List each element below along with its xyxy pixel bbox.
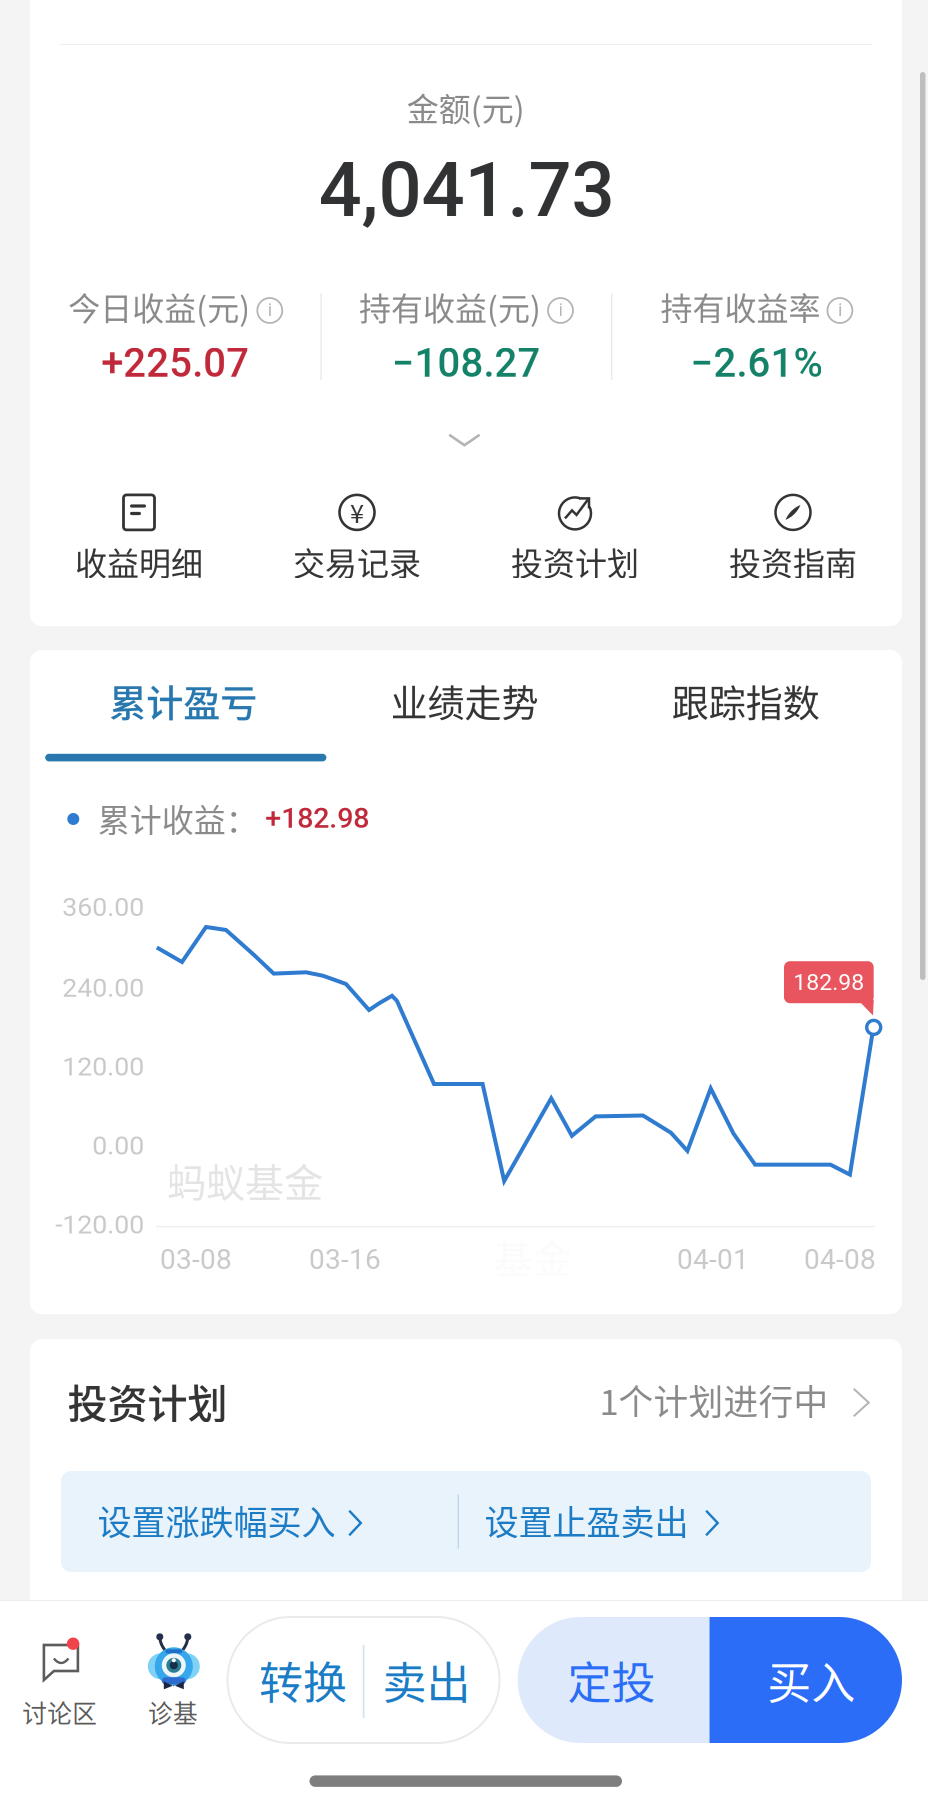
staticText: 240.00 <box>62 972 144 1003</box>
staticText: 120.00 <box>62 1051 144 1082</box>
staticText: 182.98 <box>793 969 864 996</box>
staticText: 定投 <box>568 1648 656 1712</box>
staticText: 持有收益(元) <box>359 283 541 330</box>
staticText: 投资计划 <box>511 538 639 585</box>
staticText: 累计收益： <box>98 795 258 841</box>
button[interactable]: 转换 <box>235 1617 370 1743</box>
button[interactable]: 定投 <box>516 1617 707 1743</box>
staticText: -120.00 <box>55 1209 144 1240</box>
staticText: 03-08 <box>160 1243 232 1276</box>
button[interactable]: 持有收益(元)说明 <box>548 298 573 323</box>
staticText: 04-01 <box>677 1243 749 1276</box>
staticText: 4,041.73 <box>318 145 614 235</box>
staticText: 设置涨跌幅买入 <box>97 1495 335 1545</box>
staticText: −108.27 <box>391 340 540 386</box>
staticText: 持有收益率 <box>660 283 820 330</box>
staticText: +182.98 <box>265 801 369 835</box>
button[interactable]: 买入 <box>715 1617 907 1743</box>
staticText: 诊基 <box>148 1694 198 1730</box>
staticText: 03-16 <box>309 1243 381 1276</box>
staticText: 买入 <box>767 1648 855 1712</box>
staticText: 业绩走势 <box>390 674 538 728</box>
staticText: i <box>558 299 562 321</box>
button[interactable]: 投资指南 <box>684 484 902 610</box>
staticText: 讨论区 <box>22 1694 97 1730</box>
staticText: 投资计划 <box>68 1372 228 1430</box>
staticText: +225.07 <box>101 340 249 386</box>
staticText: ¥ <box>350 494 364 530</box>
button[interactable]: 持有收益率说明 <box>827 298 852 323</box>
staticText: 1个计划进行中 <box>599 1375 828 1425</box>
staticText: 04-08 <box>804 1243 876 1276</box>
button[interactable]: 收起 <box>404 413 524 467</box>
button[interactable]: 业绩走势 <box>324 660 605 770</box>
button[interactable]: 设置涨跌幅买入 <box>61 1471 466 1572</box>
button[interactable]: 讨论区 <box>6 1626 114 1742</box>
staticText: i <box>838 299 842 321</box>
staticText: 收益明细 <box>75 538 203 585</box>
button[interactable]: 投资计划 <box>30 1339 902 1461</box>
staticText: 360.00 <box>62 891 144 922</box>
staticText: 今日收益(元) <box>68 283 250 330</box>
staticText: −2.61% <box>690 340 822 386</box>
staticText: 交易记录 <box>293 538 421 585</box>
button[interactable]: 诊基 <box>119 1626 227 1742</box>
button[interactable]: 收益明细 <box>30 484 248 610</box>
staticText: 转换 <box>259 1648 347 1712</box>
button[interactable]: 卖出 <box>359 1617 494 1743</box>
button[interactable]: 跟踪指数 <box>605 660 886 770</box>
staticText: 设置止盈卖出 <box>485 1495 689 1545</box>
staticText: 金额(元) <box>407 84 525 130</box>
staticText: 蚂蚁基金 <box>167 1152 323 1208</box>
button[interactable]: 今日收益(元)说明 <box>257 298 282 323</box>
button[interactable]: 设置止盈卖出 <box>466 1471 871 1572</box>
staticText: 投资指南 <box>729 538 857 585</box>
staticText: 累计盈亏 <box>109 674 257 728</box>
staticText: i <box>268 299 272 321</box>
button[interactable]: 投资计划 <box>466 484 684 610</box>
staticText: 卖出 <box>382 1648 470 1712</box>
staticText: 跟踪指数 <box>672 674 820 728</box>
button[interactable]: 累计盈亏 <box>43 660 324 770</box>
staticText: 0.00 <box>92 1130 144 1161</box>
button[interactable]: ¥ <box>248 484 466 610</box>
